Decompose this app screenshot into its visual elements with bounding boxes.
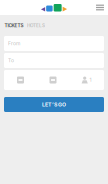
staticText: LET’S GO	[42, 101, 66, 108]
button[interactable]: TICKETS	[3, 21, 25, 30]
button[interactable]: HOTELS	[25, 21, 47, 30]
button[interactable]: LET’S GO	[4, 97, 104, 112]
button[interactable]: Passengers, 1	[69, 70, 104, 90]
staticText: To	[8, 57, 14, 63]
staticText: TICKETS	[4, 23, 23, 28]
staticText: From	[8, 40, 20, 46]
staticText: HOTELS	[27, 23, 45, 28]
staticText: 1	[89, 77, 91, 83]
button[interactable]: From	[4, 36, 104, 51]
button[interactable]: Menu	[92, 0, 108, 14]
button[interactable]: Departure date	[4, 70, 37, 90]
button[interactable]: Return date	[37, 70, 69, 90]
